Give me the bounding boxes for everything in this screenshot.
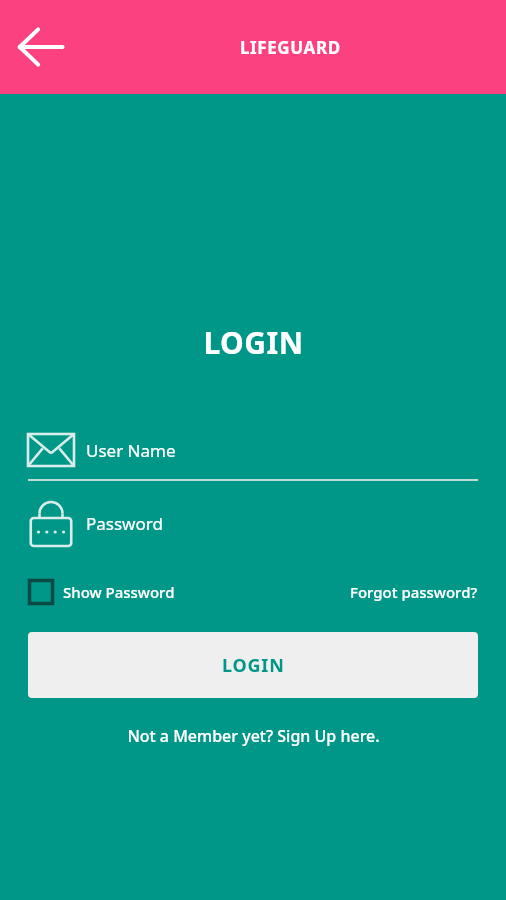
- staticText: LOGIN: [203, 322, 304, 363]
- staticText: LOGIN: [222, 653, 285, 678]
- button[interactable]: Show Password: [28, 579, 175, 605]
- staticText: Show Password: [63, 582, 175, 602]
- button[interactable]: LOGIN: [28, 632, 478, 698]
- staticText: LIFEGUARD: [240, 36, 341, 59]
- button[interactable]: User Name: [28, 427, 478, 473]
- staticText: Not a Member yet? Sign Up here.: [127, 725, 380, 747]
- button[interactable]: Back: [6, 13, 74, 81]
- staticText: Password: [86, 512, 163, 535]
- button[interactable]: Forgot password?: [350, 582, 478, 602]
- button[interactable]: Password: [28, 497, 478, 549]
- staticText: User Name: [86, 439, 176, 462]
- button[interactable]: Not a Member yet? Sign Up here.: [28, 718, 478, 754]
